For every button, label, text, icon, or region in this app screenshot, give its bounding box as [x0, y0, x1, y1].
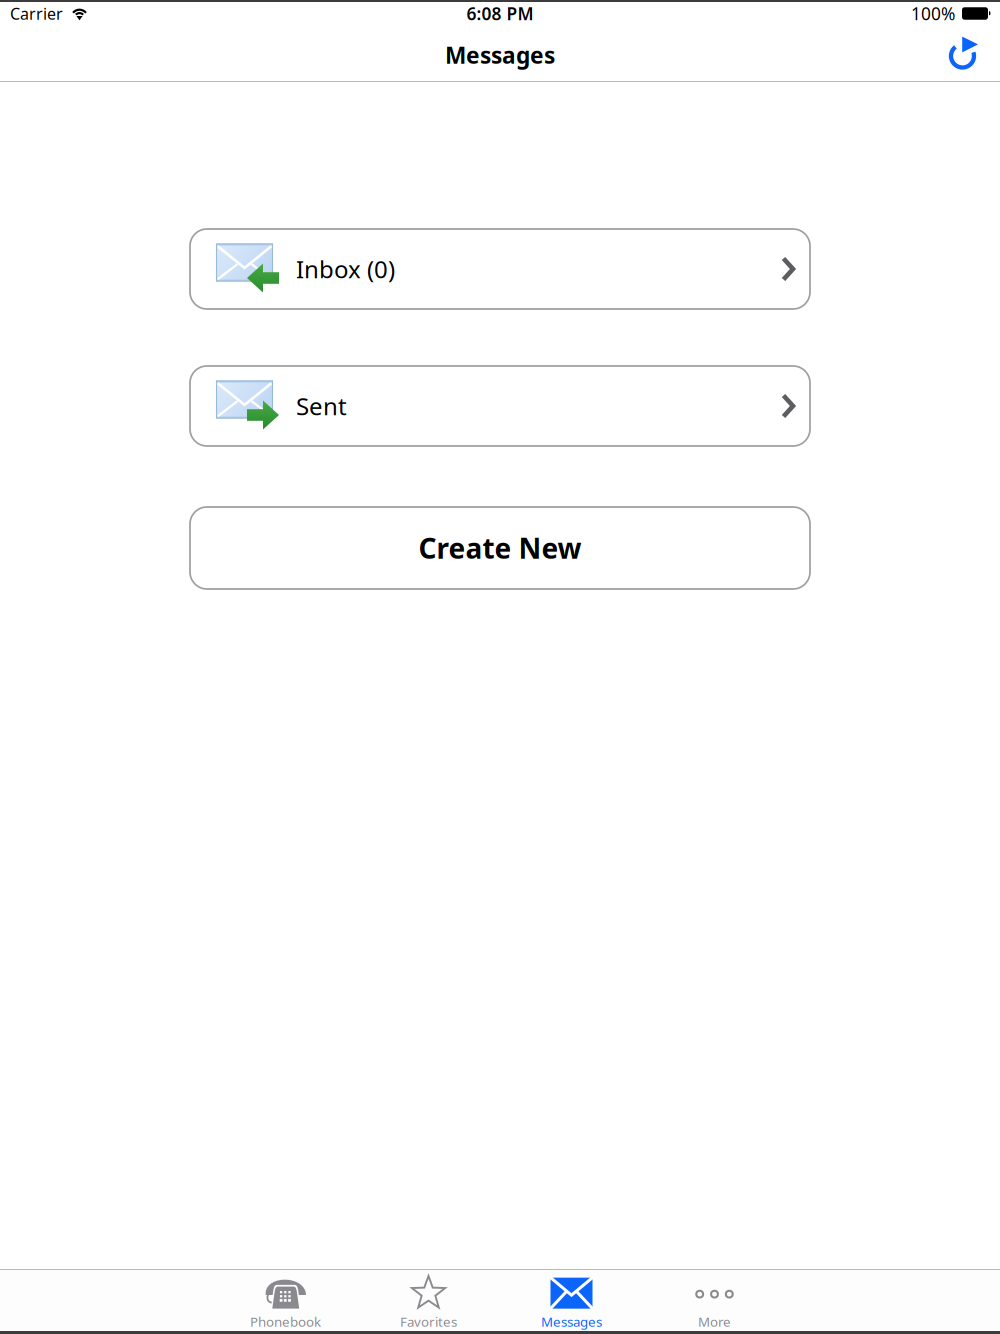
staticText: Messages [541, 1313, 602, 1330]
button[interactable]: Refresh [938, 30, 989, 76]
staticText: More [698, 1313, 731, 1330]
staticText: Sent [296, 390, 347, 422]
staticText: Create New [418, 529, 581, 567]
button[interactable]: Create New [190, 507, 810, 589]
button[interactable]: Phonebook [214, 1270, 357, 1331]
staticText: Inbox (0) [296, 253, 395, 285]
staticText: Messages [445, 40, 555, 70]
button[interactable]: Sent [190, 366, 810, 446]
staticText: 6:08 PM [466, 2, 533, 25]
button[interactable]: Favorites [357, 1270, 500, 1331]
staticText: Phonebook [250, 1313, 321, 1330]
staticText: Carrier [10, 3, 63, 24]
button[interactable]: Messages [500, 1270, 643, 1331]
staticText: 100% [911, 2, 955, 25]
staticText: Favorites [400, 1313, 457, 1330]
button[interactable]: Inbox (0) [190, 229, 810, 309]
button[interactable]: More [643, 1270, 786, 1331]
